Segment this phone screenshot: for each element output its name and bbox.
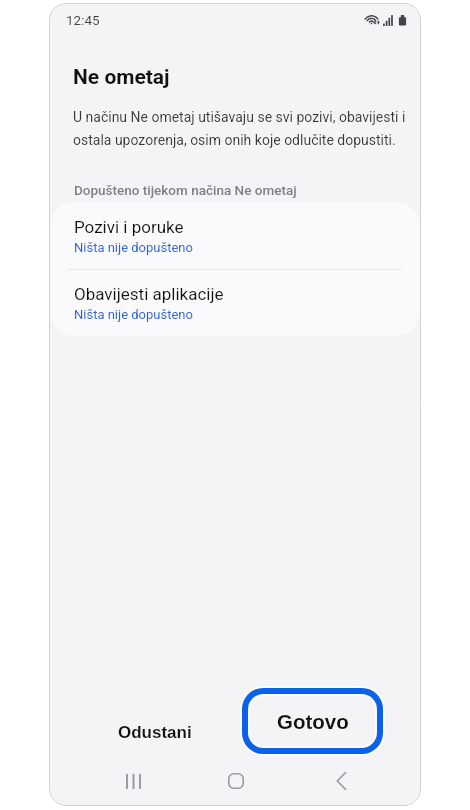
staticText: Ništa nije dopušteno (74, 307, 193, 322)
staticText: 12:45 (66, 12, 100, 28)
button[interactable]: Odustani (102, 711, 208, 754)
staticText: Pozivi i poruke (74, 217, 184, 237)
staticText: Ne ometaj (73, 65, 170, 90)
staticText: Obavijesti aplikacije (74, 284, 224, 304)
button[interactable]: Back (320, 760, 362, 802)
staticText: Dopušteno tijekom načina Ne ometaj (74, 182, 297, 198)
staticText: U načinu Ne ometaj utišavaju se svi pozi… (73, 109, 413, 149)
button[interactable]: Recent apps (112, 760, 154, 802)
staticText: Gotovo (277, 710, 349, 733)
button[interactable]: Obavijesti aplikacije (49, 270, 421, 336)
staticText: Ništa nije dopušteno (74, 240, 193, 255)
button[interactable]: Gotovo (250, 696, 375, 746)
button[interactable]: Pozivi i poruke (49, 202, 421, 269)
button[interactable]: Home (215, 760, 257, 802)
